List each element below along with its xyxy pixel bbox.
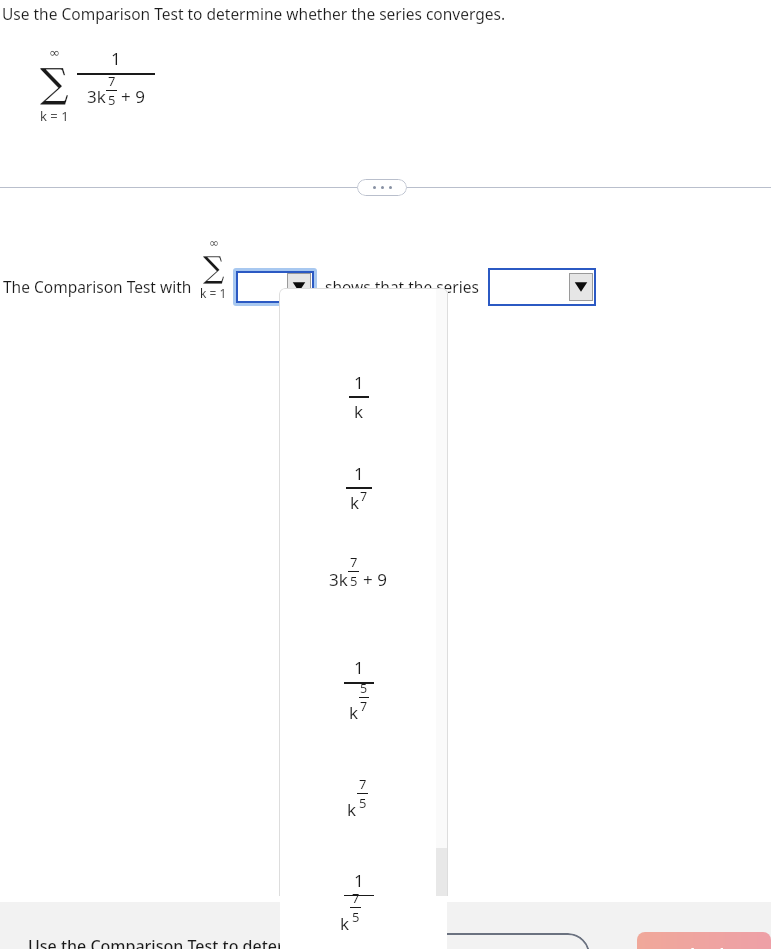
staticText: k [340, 912, 350, 935]
staticText: 1 [354, 869, 364, 892]
staticText: 7 [360, 698, 368, 715]
staticText: 5 [359, 794, 367, 812]
button[interactable]: Secondary action [330, 933, 590, 949]
button[interactable]: 1 [279, 450, 436, 526]
button[interactable]: Select comparison series [236, 271, 314, 303]
staticText: 3k [329, 568, 348, 591]
staticText: ∞ [209, 236, 219, 250]
button[interactable]: 3k [279, 540, 436, 618]
button[interactable]: 1 [279, 860, 436, 946]
staticText: 5 [360, 680, 368, 697]
button[interactable]: Check [637, 932, 771, 949]
staticText: 7 [108, 72, 116, 90]
staticText: k = 1 [40, 107, 69, 125]
button[interactable]: 1 [279, 360, 436, 434]
staticText: 7 [350, 553, 358, 571]
staticText: The Comparison Test with [3, 276, 192, 297]
staticText: k [350, 491, 360, 514]
staticText: 5 [350, 572, 358, 590]
button[interactable]: Select conclusion [488, 268, 596, 306]
staticText: + 9 [363, 568, 387, 591]
staticText: k [349, 701, 359, 724]
staticText: ∞ [49, 45, 60, 60]
staticText: Use the Comparison Test to determine [28, 935, 323, 949]
staticText: 7 [360, 488, 368, 505]
staticText: ∑ [40, 60, 69, 107]
staticText: ∑ [203, 250, 225, 285]
staticText: 7 [359, 775, 367, 793]
staticText: 1 [354, 656, 364, 679]
staticText: 1 [354, 371, 364, 394]
staticText: Check [679, 944, 730, 949]
button[interactable]: k [279, 764, 436, 836]
staticText: k = 1 [200, 285, 227, 301]
staticText: 1 [111, 47, 121, 70]
staticText: 3k [87, 85, 106, 108]
staticText: 5 [352, 908, 360, 926]
staticText: 7 [361, 893, 369, 911]
staticText: Use the Comparison Test to determine whe… [2, 3, 506, 24]
staticText: 5 [108, 91, 116, 109]
button[interactable]: More options [357, 179, 407, 196]
staticText: 1 [354, 462, 364, 485]
staticText: + 9 [121, 85, 145, 108]
button[interactable]: 1 [279, 648, 436, 730]
staticText: k [349, 916, 359, 939]
staticText: k [354, 400, 364, 423]
staticText: 7 [352, 889, 360, 907]
staticText: k [347, 798, 357, 821]
staticText: shows that the series [325, 276, 479, 297]
